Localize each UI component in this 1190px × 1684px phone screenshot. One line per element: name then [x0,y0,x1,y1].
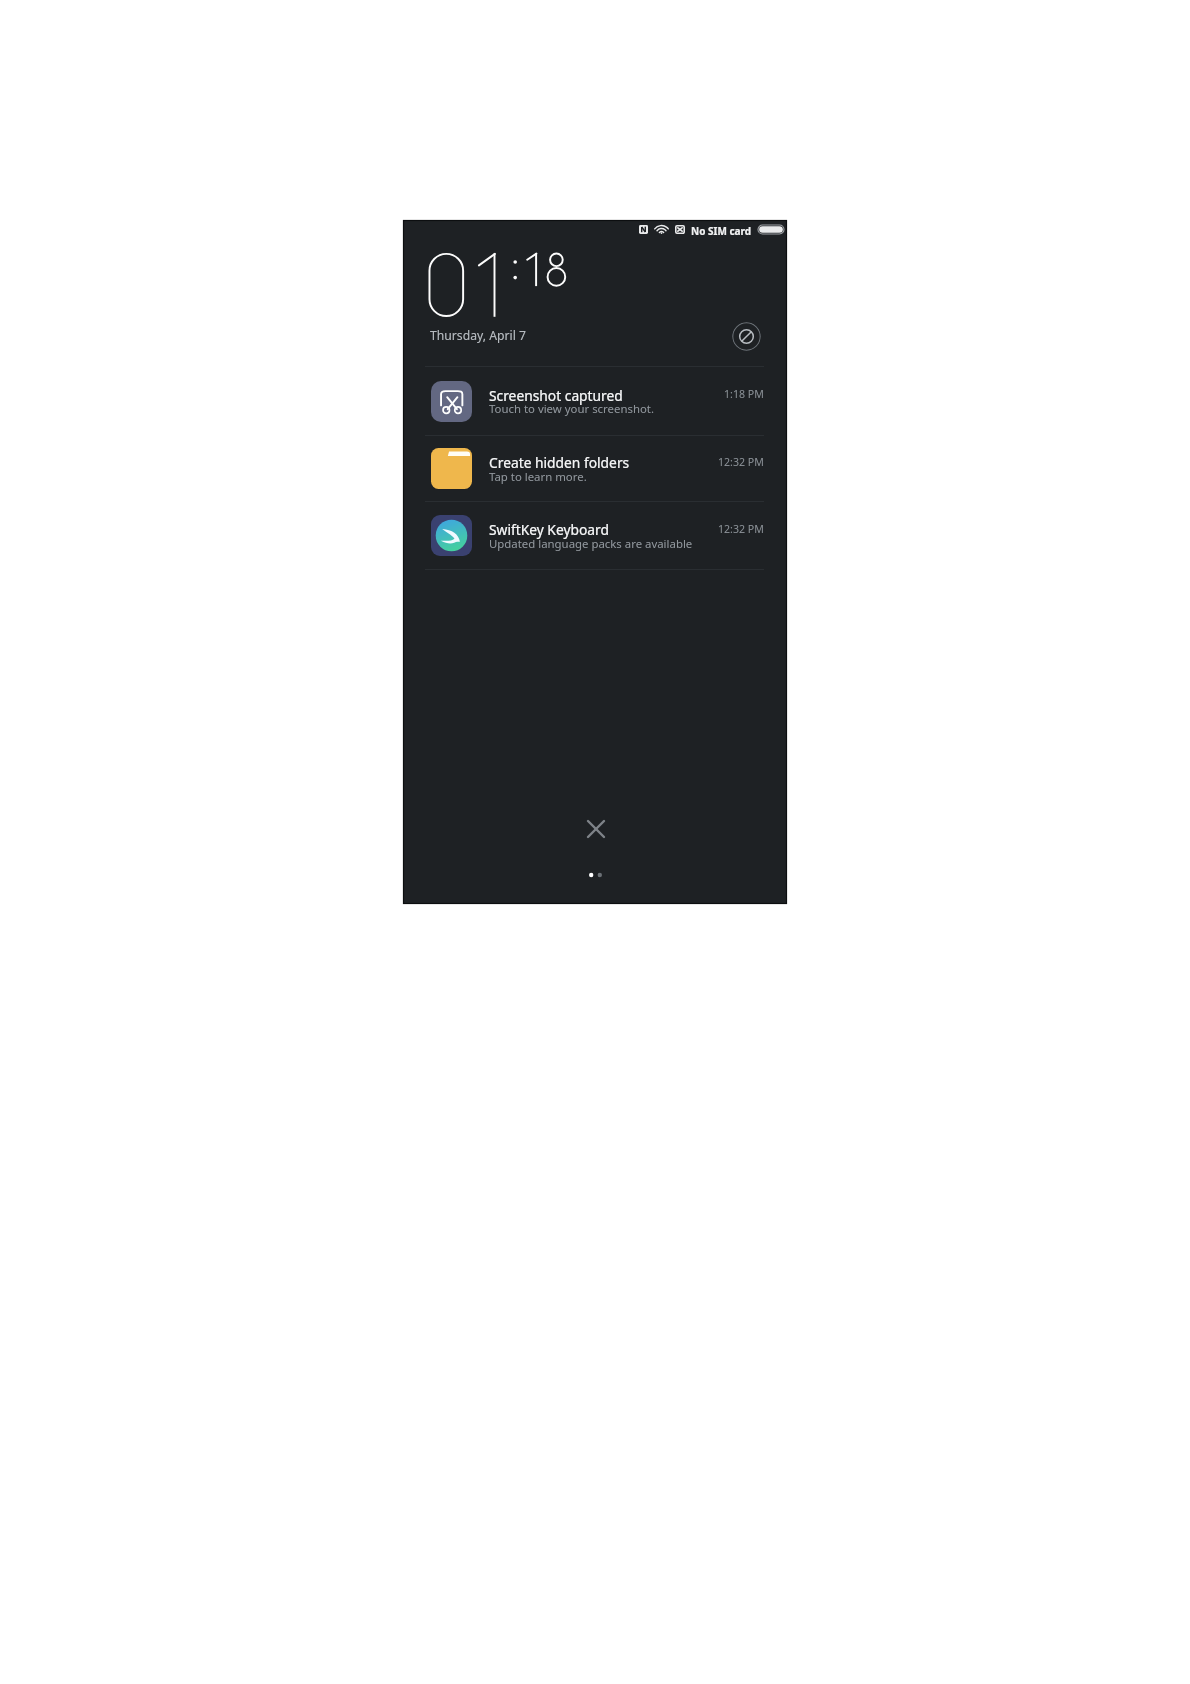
button[interactable]: Do not disturb [732,322,761,351]
staticText: Thursday, April 7 [430,327,526,344]
staticText: SwiftKey Keyboard [489,520,609,539]
button[interactable]: Dismiss notifications [579,812,612,845]
staticText: No SIM card [691,224,752,235]
staticText: Screenshot captured [489,386,623,405]
button[interactable]: Create hidden folders [403,436,787,501]
staticText: 1:18 PM [724,387,764,401]
staticText: Create hidden folders [489,453,630,472]
staticText: 12:32 PM [718,522,764,536]
staticText: 12:32 PM [718,455,764,469]
button[interactable]: SwiftKey Keyboard [403,502,787,569]
staticText: Touch to view your screenshot. [489,401,654,417]
staticText: Tap to learn more. [489,469,587,485]
staticText: Updated language packs are available [489,536,693,552]
button[interactable]: Screenshot captured [403,367,787,435]
